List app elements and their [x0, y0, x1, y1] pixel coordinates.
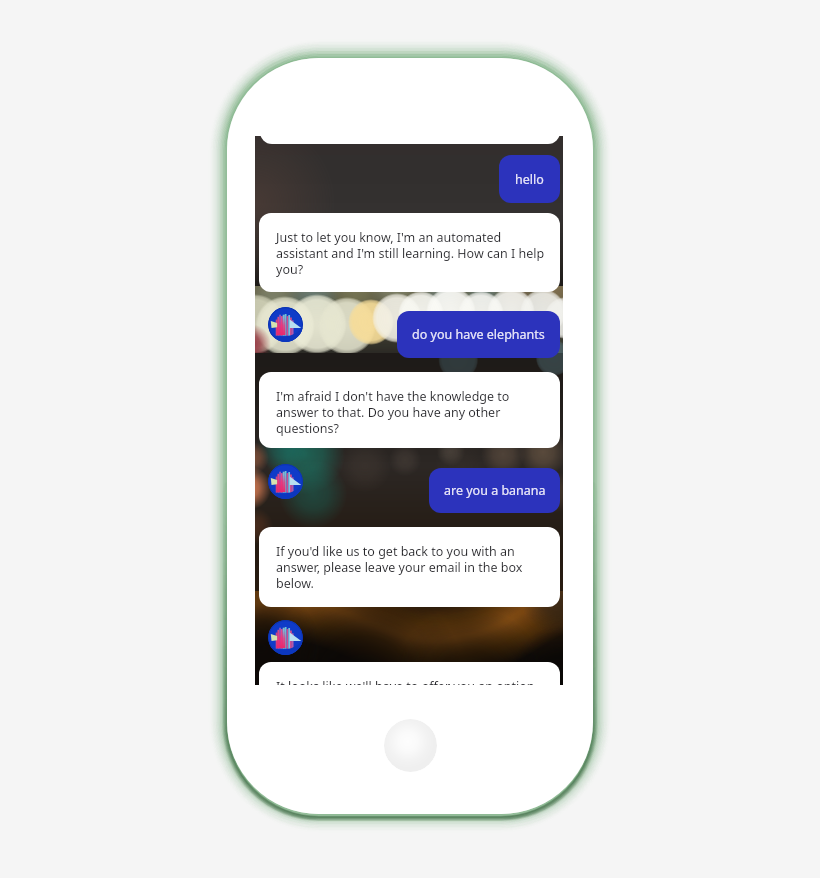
button[interactable]: Avatar: [268, 620, 303, 655]
staticText: Just to let you know, I'm an automated a…: [276, 229, 546, 278]
button[interactable]: Avatar: [268, 464, 303, 499]
button[interactable]: Avatar: [268, 307, 303, 342]
button[interactable]: If you'd like us to get back to you with…: [259, 527, 560, 607]
button[interactable]: Just to let you know, I'm an automated a…: [259, 213, 560, 292]
button[interactable]: are you a banana: [429, 468, 560, 513]
button[interactable]: hello: [499, 155, 560, 203]
button[interactable]: do you have elephants: [397, 311, 560, 358]
button[interactable]: I'm afraid I don't have the knowledge to…: [259, 372, 560, 448]
staticText: It looks like we'll have to offer you an…: [276, 678, 546, 685]
staticText: do you have elephants: [412, 326, 545, 343]
staticText: are you a banana: [444, 482, 546, 499]
button[interactable]: It looks like we'll have to offer you an…: [259, 662, 560, 685]
staticText: I'm afraid I don't have the knowledge to…: [276, 388, 546, 437]
staticText: hello: [515, 171, 544, 188]
button[interactable]: Home: [384, 719, 437, 772]
staticText: If you'd like us to get back to you with…: [276, 543, 546, 592]
